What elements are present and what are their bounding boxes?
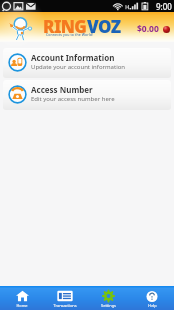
staticText: Connects you to the World! — [46, 32, 94, 37]
staticText: 9:00 — [156, 1, 172, 12]
button[interactable]: Home — [0, 286, 43, 310]
button[interactable]: Settings — [86, 286, 130, 310]
staticText: Home — [16, 303, 28, 308]
staticText: RING — [43, 15, 87, 38]
staticText: Help — [148, 303, 157, 308]
staticText: Settings — [101, 303, 116, 308]
button[interactable]: Account Information — [3, 48, 171, 78]
staticText: VOZ — [87, 15, 121, 38]
button[interactable]: Access Number — [3, 80, 171, 110]
staticText: Account Information — [31, 52, 115, 63]
staticText: Access Number — [31, 84, 93, 95]
staticText: $0.00 — [137, 23, 159, 35]
staticText: Update your account information — [31, 63, 126, 71]
staticText: Edit your access number here — [31, 95, 115, 103]
button[interactable]: Help — [130, 286, 174, 310]
staticText: Transactions — [53, 303, 77, 308]
button[interactable]: Transactions — [43, 286, 86, 310]
